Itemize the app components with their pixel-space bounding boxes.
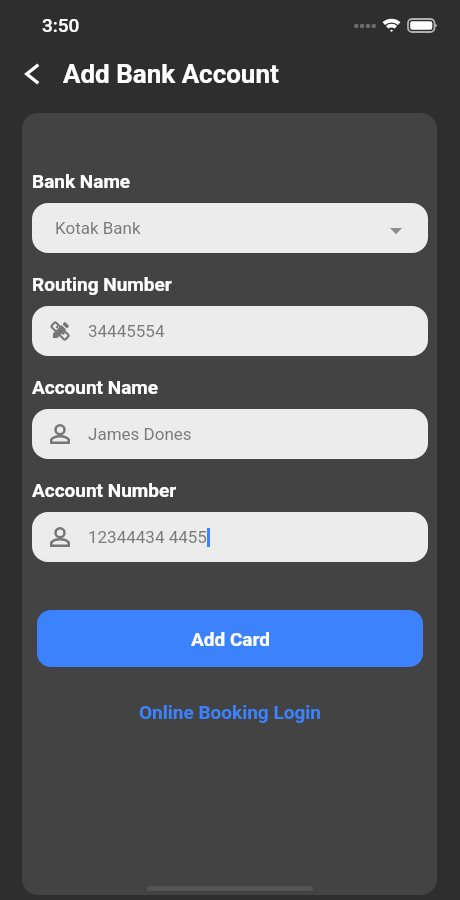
- staticText: Add Bank Account: [63, 59, 279, 89]
- staticText: James Dones: [88, 424, 192, 444]
- button[interactable]: 12344434 4455: [32, 512, 428, 562]
- button[interactable]: Online Booking Login: [133, 695, 327, 729]
- staticText: 34445554: [88, 321, 165, 341]
- button[interactable]: James Dones: [32, 409, 428, 459]
- staticText: 12344434 4455: [88, 527, 207, 547]
- button[interactable]: 34445554: [32, 306, 428, 356]
- staticText: Bank Name: [32, 170, 131, 192]
- button[interactable]: Add Card: [37, 610, 423, 667]
- staticText: 3:50: [42, 14, 80, 36]
- staticText: Account Number: [32, 479, 177, 501]
- staticText: Routing Number: [32, 273, 172, 295]
- staticText: Account Name: [32, 376, 159, 398]
- staticText: Add Card: [191, 628, 270, 650]
- button[interactable]: Kotak Bank: [32, 203, 428, 253]
- button[interactable]: Back: [15, 57, 49, 91]
- staticText: Kotak Bank: [55, 218, 141, 238]
